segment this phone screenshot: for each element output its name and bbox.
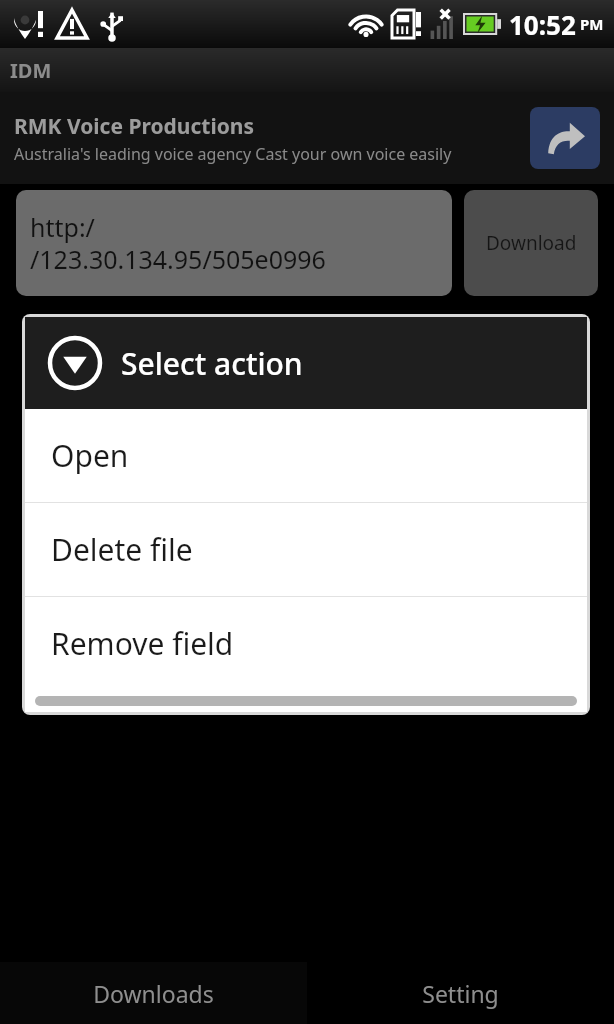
button[interactable]: http:/ /123.30.134.95/505e0996	[16, 190, 452, 296]
staticText: RMK Voice Productions	[14, 112, 255, 141]
staticText: 10:52	[509, 7, 576, 42]
button[interactable]: Delete file	[25, 503, 587, 596]
staticText: PM	[580, 14, 604, 34]
staticText: Open	[51, 435, 129, 476]
staticText: Download	[486, 230, 577, 256]
button[interactable]: Open advertisement	[530, 107, 600, 169]
staticText: http:/ /123.30.134.95/505e0996	[30, 210, 326, 276]
staticText: IDM	[10, 57, 52, 84]
button[interactable]: Select action	[25, 317, 587, 409]
button[interactable]: Download	[464, 190, 598, 296]
staticText: Delete file	[51, 529, 193, 570]
staticText: Remove field	[51, 623, 234, 664]
button[interactable]: Setting	[307, 962, 614, 1024]
button[interactable]: Open	[25, 409, 587, 502]
staticText: Setting	[422, 978, 499, 1009]
staticText: Downloads	[93, 978, 214, 1009]
button[interactable]: Downloads	[0, 962, 307, 1024]
staticText: Australia's leading voice agency Cast yo…	[14, 143, 452, 165]
button[interactable]: Remove field	[25, 597, 587, 690]
staticText: Select action	[121, 343, 303, 384]
button[interactable]: RMK Voice Productions	[0, 92, 614, 184]
